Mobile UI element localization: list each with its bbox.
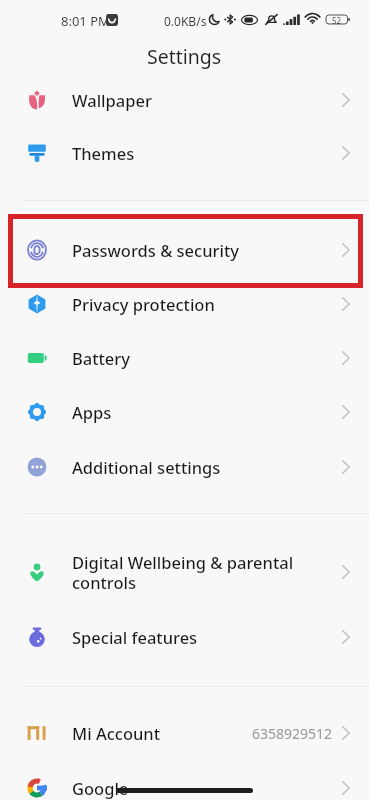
staticText: Digital Wellbeing & parental controls xyxy=(72,551,342,594)
staticText: Google xyxy=(72,777,342,799)
button[interactable]: Mi Account xyxy=(0,706,369,760)
button[interactable]: Battery xyxy=(0,331,369,385)
button[interactable]: Privacy protection xyxy=(0,277,369,331)
staticText: Additional settings xyxy=(72,456,342,478)
button[interactable]: Passwords & security xyxy=(0,223,369,277)
staticText: 0.0KB/s xyxy=(164,13,207,29)
staticText: Settings xyxy=(147,43,222,70)
button[interactable]: Special features xyxy=(0,610,369,664)
button[interactable]: Themes xyxy=(0,126,369,180)
staticText: Wallpaper xyxy=(72,89,342,111)
staticText: Privacy protection xyxy=(72,293,342,315)
button[interactable]: Additional settings xyxy=(0,440,369,494)
staticText: 52 xyxy=(332,15,342,24)
button[interactable]: Apps xyxy=(0,385,369,439)
staticText: 6358929512 xyxy=(252,724,333,743)
button[interactable]: Digital Wellbeing & parental controls xyxy=(0,536,369,608)
staticText: Special features xyxy=(72,626,342,648)
staticText: Themes xyxy=(72,142,342,164)
staticText: Battery xyxy=(72,347,342,369)
staticText: Apps xyxy=(72,401,342,423)
staticText: Passwords & security xyxy=(72,239,342,261)
button[interactable]: Google xyxy=(0,761,369,800)
button[interactable]: Wallpaper xyxy=(0,73,369,127)
staticText: Mi Account xyxy=(72,722,252,744)
staticText: 8:01 PM xyxy=(61,12,110,30)
